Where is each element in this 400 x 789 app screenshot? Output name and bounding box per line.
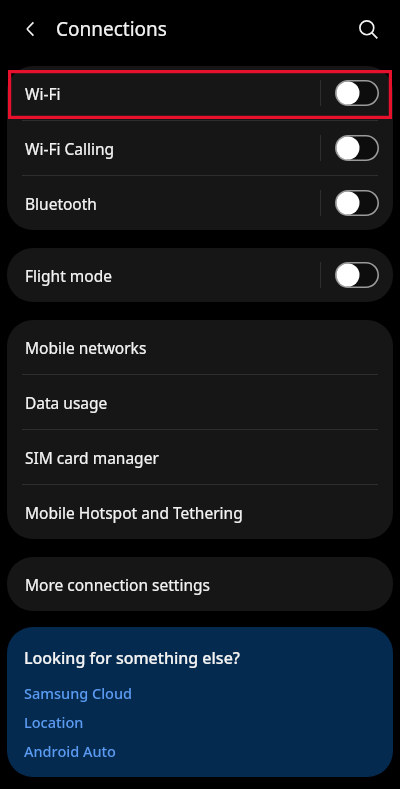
staticText: Wi-Fi <box>25 83 320 104</box>
staticText: Samsung Cloud <box>24 683 133 703</box>
button[interactable]: Flight mode <box>7 248 393 302</box>
staticText: Wi-Fi Calling <box>25 138 320 159</box>
button[interactable]: Search <box>348 9 388 49</box>
staticText: Data usage <box>25 392 108 413</box>
button[interactable]: Bluetooth <box>7 176 393 230</box>
button[interactable]: Samsung Cloud <box>24 683 376 703</box>
staticText: More connection settings <box>25 574 210 595</box>
button[interactable]: SIM card manager <box>7 430 393 484</box>
button[interactable]: Data usage <box>7 375 393 429</box>
staticText: Mobile Hotspot and Tethering <box>25 502 243 523</box>
staticText: Connections <box>56 16 167 42</box>
button[interactable]: Toggle <box>335 80 379 106</box>
button[interactable]: Toggle <box>335 262 379 288</box>
button[interactable]: Android Auto <box>24 741 376 761</box>
button[interactable]: Toggle <box>335 135 379 161</box>
staticText: Location <box>24 712 84 732</box>
button[interactable]: Wi-Fi <box>7 66 393 120</box>
button[interactable]: Toggle <box>335 190 379 216</box>
staticText: Android Auto <box>24 741 116 761</box>
staticText: Bluetooth <box>25 193 320 214</box>
staticText: SIM card manager <box>25 447 159 468</box>
staticText: Flight mode <box>25 265 320 286</box>
button[interactable]: More connection settings <box>7 557 393 611</box>
button[interactable]: Mobile Hotspot and Tethering <box>7 485 393 539</box>
button[interactable]: Location <box>24 712 376 732</box>
staticText: Mobile networks <box>25 337 147 358</box>
button[interactable]: Wi-Fi Calling <box>7 121 393 175</box>
button[interactable]: Mobile networks <box>7 320 393 374</box>
button[interactable]: Back <box>12 10 50 48</box>
staticText: Looking for something else? <box>24 647 240 669</box>
